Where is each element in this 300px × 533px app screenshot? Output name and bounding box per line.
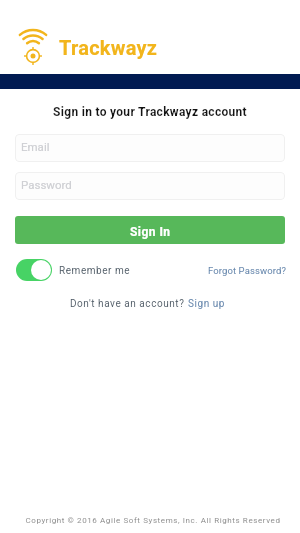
button[interactable]: Sign In bbox=[15, 216, 285, 244]
staticText: Sign in to your Trackwayz account bbox=[0, 105, 300, 119]
staticText: Remember me bbox=[59, 265, 131, 277]
staticText: Trackwayz bbox=[59, 36, 158, 59]
staticText: Sign In bbox=[130, 225, 171, 239]
staticText: Don't have an account? bbox=[70, 298, 188, 310]
button[interactable]: Password bbox=[15, 172, 285, 200]
button[interactable]: Sign up bbox=[188, 298, 225, 310]
staticText: Copyright © 2016 Agile Soft Systems, Inc… bbox=[3, 516, 300, 525]
staticText: Password bbox=[21, 178, 72, 191]
staticText: Email bbox=[21, 140, 50, 153]
button[interactable]: Email bbox=[15, 134, 285, 162]
other: Trackwayz logo bbox=[14, 14, 52, 72]
button[interactable]: Remember me toggle bbox=[16, 259, 52, 281]
button[interactable]: Remember me toggle bbox=[16, 259, 131, 281]
button[interactable]: Forgot Password? bbox=[208, 265, 286, 276]
